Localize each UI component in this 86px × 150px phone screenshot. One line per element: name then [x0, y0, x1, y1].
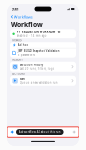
- staticText: JMP BUILD Snapshot Validation: [18, 49, 60, 53]
- staticText: Ad hoc: [18, 43, 28, 47]
- staticText: Last 20 runs, filters, logs: [20, 67, 54, 70]
- staticText: Execution History: [20, 63, 43, 66]
- staticText: ACTIONS: [12, 72, 24, 76]
- button[interactable]: Ask workflow AI about this run: [16, 129, 64, 135]
- button[interactable]: Ad hoc: [10, 42, 76, 48]
- staticText: 9:41: [12, 6, 19, 12]
- staticText: 3 parameters: [18, 53, 35, 57]
- button[interactable]: PY VALIDATION WORKFLOW v3: [10, 29, 76, 38]
- staticText: Ask workflow AI about this run: [19, 130, 61, 134]
- button[interactable]: JMP BUILD Snapshot Validation: [10, 48, 76, 58]
- staticText: Enabled · 14 min ago: [17, 34, 47, 37]
- staticText: Queue a new validation run: [20, 81, 58, 84]
- staticText: Workflow: [11, 20, 43, 29]
- button[interactable]: Workflows: [11, 14, 75, 19]
- button[interactable]: Execution History: [10, 62, 76, 72]
- button[interactable]: Start: [10, 76, 76, 86]
- button[interactable]: Voice input: [72, 130, 76, 134]
- staticText: PY VALIDATION WORKFLOW v3: [17, 30, 61, 33]
- staticText: Workflows: [14, 14, 33, 19]
- staticText: Start: [20, 77, 25, 81]
- staticText: HISTORY: [12, 58, 23, 61]
- button[interactable]: AI assistant: [10, 130, 14, 134]
- staticText: DETAILS: [12, 38, 21, 42]
